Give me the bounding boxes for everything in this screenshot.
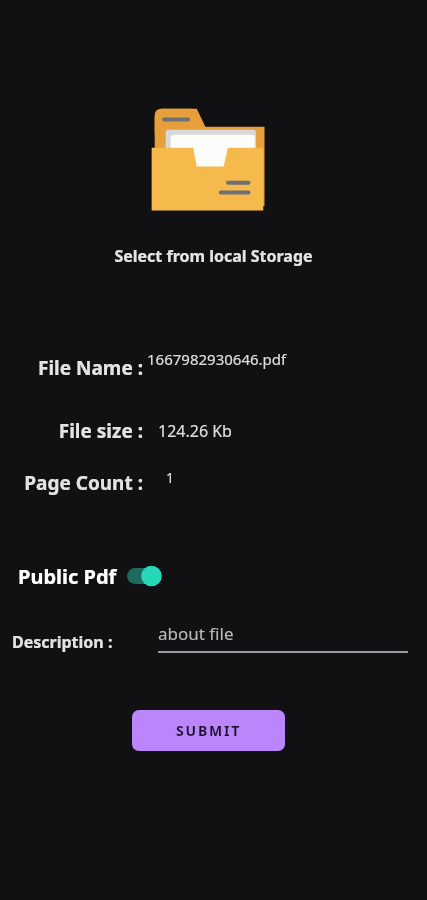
staticText: Page Count : <box>0 470 143 496</box>
staticText: Description : <box>12 631 113 653</box>
staticText: SUBMIT <box>176 721 242 740</box>
staticText: Public Pdf <box>18 563 117 590</box>
staticText: 124.26 Kb <box>158 420 232 442</box>
button[interactable]: about file <box>158 622 408 653</box>
button[interactable]: SUBMIT <box>132 710 285 751</box>
staticText: about file <box>158 622 234 645</box>
button[interactable]: Public Pdf <box>18 558 161 594</box>
staticText: File Name : <box>0 355 143 381</box>
staticText: Select from local Storage <box>0 245 427 267</box>
staticText: 1 <box>166 468 175 487</box>
staticText: File size : <box>0 418 143 444</box>
button[interactable]: Select from local Storage <box>0 245 427 267</box>
button[interactable]: Select file from local storage <box>148 92 270 216</box>
staticText: 1667982930646.pdf <box>147 349 287 369</box>
